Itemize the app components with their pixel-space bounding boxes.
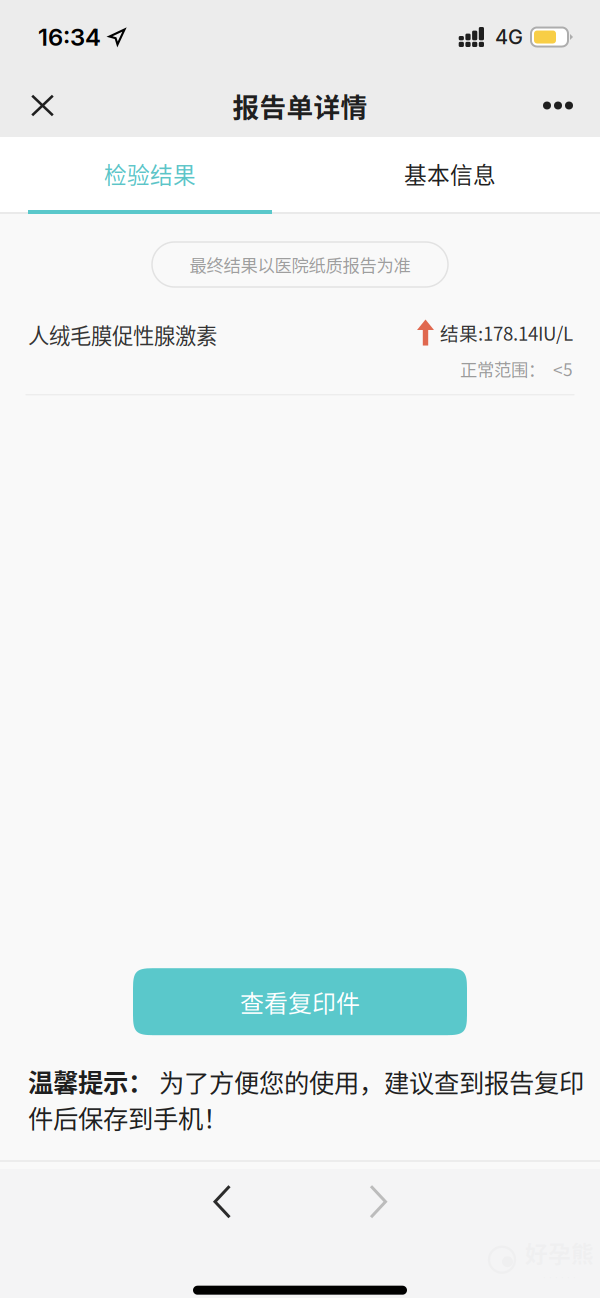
staticText: 查看复印件 — [240, 984, 360, 1019]
staticText: 温馨提示： 为了方便您的使用，建议查到报告复印 件后保存到手机！ — [28, 1063, 584, 1135]
staticText: 报告单详情 — [232, 86, 367, 125]
staticText: 人绒毛膜促性腺激素 — [28, 319, 217, 350]
staticText: 结果:178.14IU/L — [440, 319, 573, 346]
staticText: 4G — [495, 25, 523, 49]
staticText: 最终结果以医院纸质报告为准 — [189, 252, 410, 277]
staticText: 正常范围： <5 — [460, 356, 573, 381]
staticText: 检验结果 — [104, 157, 196, 190]
button[interactable]: Forward — [341, 1163, 415, 1241]
staticText: 基本信息 — [404, 157, 496, 190]
button[interactable]: 基本信息 — [300, 137, 600, 210]
button[interactable]: 检验结果 — [0, 137, 300, 210]
button[interactable]: More options — [521, 77, 600, 133]
button[interactable]: 查看复印件 — [133, 968, 467, 1035]
button[interactable]: Close — [0, 76, 76, 134]
staticText: 16:34 — [38, 22, 101, 51]
button[interactable]: Back — [185, 1163, 259, 1241]
